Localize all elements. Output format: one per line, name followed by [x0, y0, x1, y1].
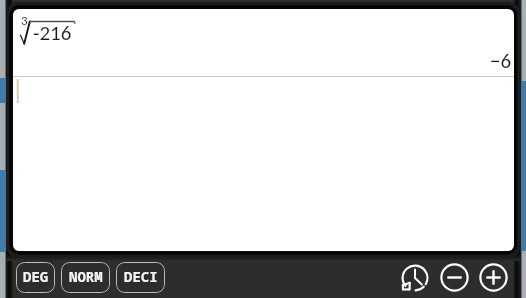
staticText: 3	[21, 13, 28, 29]
button[interactable]: NORM	[61, 262, 110, 293]
staticText: DECI	[124, 267, 158, 286]
button[interactable]: DEG	[16, 262, 55, 293]
staticText: −6	[490, 48, 512, 74]
button[interactable]: DECI	[116, 262, 165, 293]
button[interactable]: Zoom in	[479, 263, 508, 292]
staticText: NORM	[69, 267, 103, 286]
button[interactable]: 3	[13, 9, 514, 251]
staticText: -216	[33, 20, 72, 46]
button[interactable]: History	[401, 264, 429, 292]
staticText: DEG	[23, 267, 49, 286]
button[interactable]: Zoom out	[440, 263, 469, 292]
